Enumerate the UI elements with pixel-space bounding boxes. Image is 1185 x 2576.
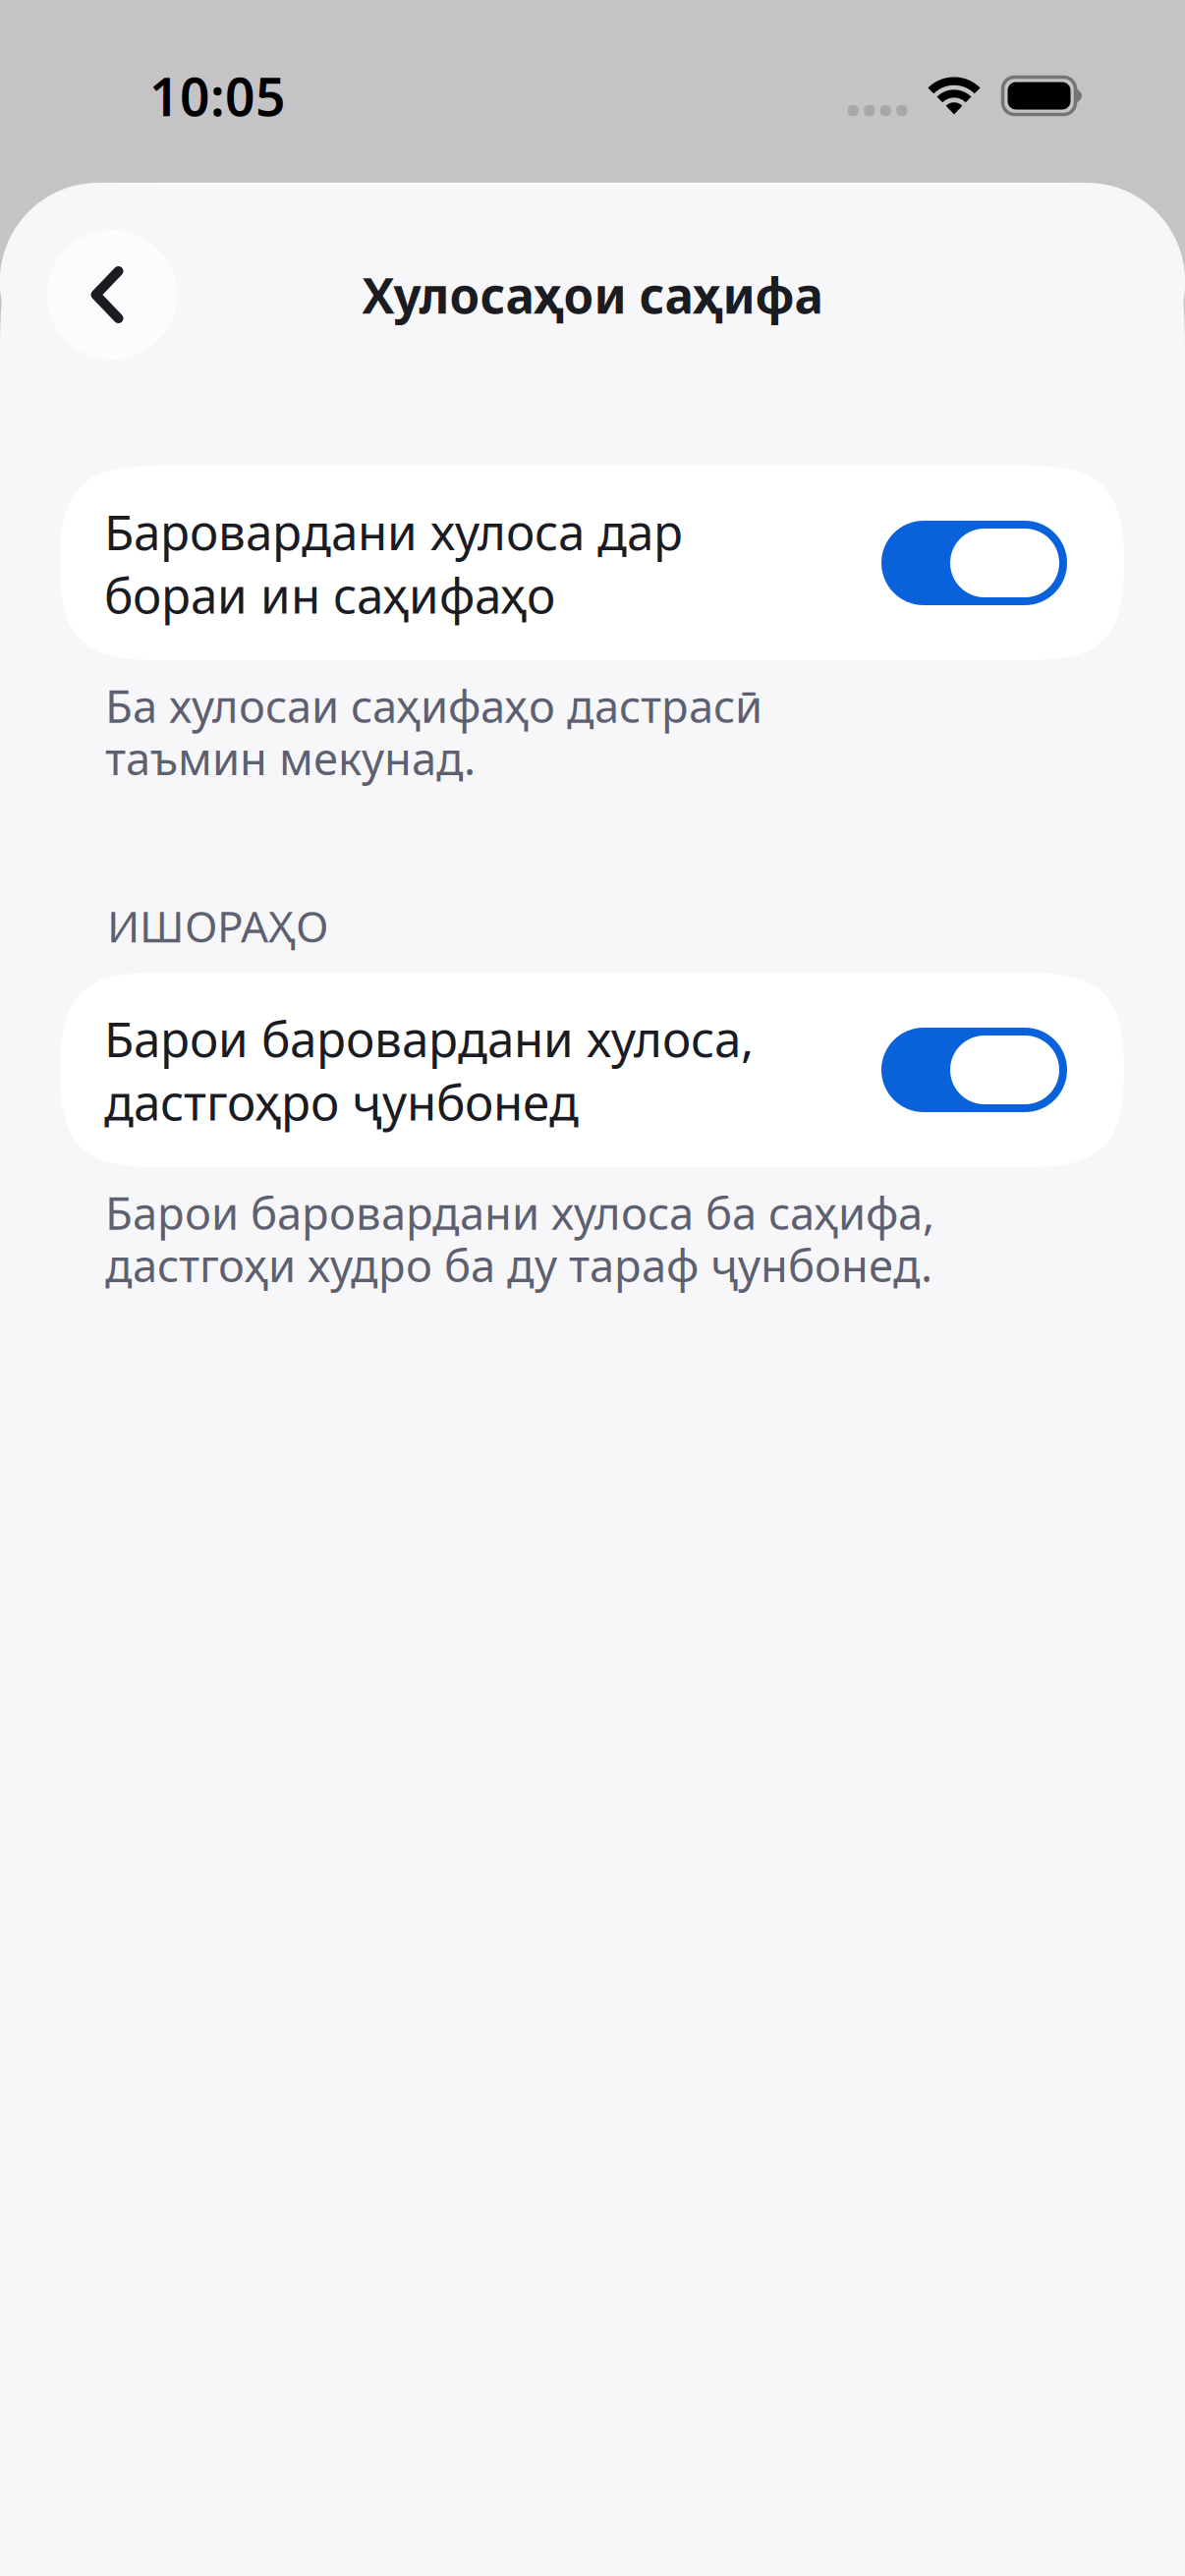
button[interactable]: Барои баровардани хулоса, дастгоҳро ҷунб… [60,973,1124,1167]
button[interactable]: Back [47,230,177,360]
staticText: Баровардани хулоса дар бораи ин саҳифаҳо [104,499,683,627]
staticText: Ба хулосаи саҳифаҳо дастрасӣ таъмин меку… [105,676,762,787]
staticText: Барои баровардани хулоса ба саҳифа, даст… [105,1183,934,1294]
staticText: Хулосаҳои саҳифа [362,263,823,327]
staticText: 10:05 [149,61,286,131]
staticText: Барои баровардани хулоса, дастгоҳро ҷунб… [104,1006,754,1134]
staticText: ИШОРАҲО [107,897,328,954]
button[interactable]: Баровардани хулоса дар бораи ин саҳифаҳо [60,466,1124,660]
